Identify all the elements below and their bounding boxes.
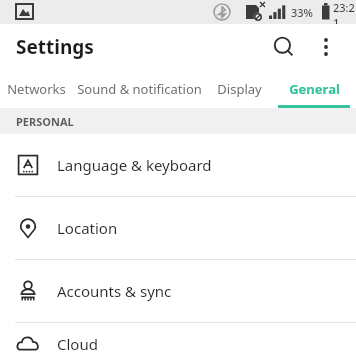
- staticText: Display: [217, 80, 262, 98]
- button[interactable]: Sound & notification: [72, 70, 206, 108]
- button[interactable]: Cloud: [0, 323, 356, 364]
- staticText: PERSONAL: [16, 114, 74, 129]
- staticText: General: [289, 80, 340, 98]
- button[interactable]: Display: [206, 70, 272, 108]
- button[interactable]: Language & keyboard: [0, 134, 356, 196]
- button[interactable]: General: [272, 70, 356, 108]
- staticText: 33%: [291, 5, 313, 20]
- button[interactable]: Search: [264, 27, 304, 67]
- button[interactable]: Networks: [0, 70, 72, 108]
- staticText: Networks: [7, 80, 66, 98]
- staticText: 23:21: [333, 0, 356, 24]
- button[interactable]: Location: [0, 197, 356, 259]
- staticText: Cloud: [57, 334, 98, 354]
- button[interactable]: Accounts & sync: [0, 260, 356, 322]
- staticText: Location: [57, 218, 118, 238]
- staticText: Settings: [16, 34, 94, 60]
- staticText: Language & keyboard: [57, 155, 212, 175]
- staticText: Accounts & sync: [57, 281, 172, 301]
- button[interactable]: More options: [306, 27, 346, 67]
- staticText: Sound & notification: [77, 80, 202, 98]
